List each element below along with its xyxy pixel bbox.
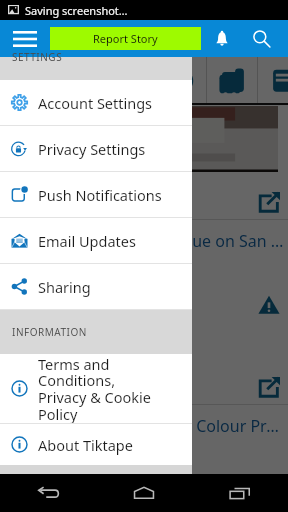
staticText: Push Notifications (38, 185, 162, 205)
button[interactable]: Category 6 (258, 57, 288, 105)
button[interactable]: Category 1 (3, 57, 54, 105)
button[interactable]: Category 2 (54, 57, 105, 105)
staticText: Sharing (38, 277, 91, 297)
button[interactable]: Category 4 (156, 57, 207, 105)
button[interactable]: About Tiktape (0, 424, 192, 465)
button[interactable]: Recent apps (192, 474, 288, 512)
staticText: SETTINGS (12, 50, 63, 64)
staticText: INFORMATION (12, 325, 87, 339)
staticText: Report Story (93, 31, 158, 46)
staticText: The Spring Flower Show Colour Promenade … (12, 415, 280, 437)
staticText: Terms and Conditions, Privacy & Cookie P… (38, 354, 160, 423)
button[interactable]: Open navigation drawer (0, 20, 50, 57)
staticText: About Tiktape (38, 435, 133, 455)
staticText: Account Settings (38, 93, 153, 113)
staticText: by Andrew Kelly (12, 259, 87, 273)
button[interactable]: Back (0, 474, 96, 512)
staticText: Privacy Settings (38, 139, 146, 159)
button[interactable]: Report (258, 294, 280, 316)
button[interactable]: Account Settings (0, 80, 192, 125)
button[interactable]: Category 3 (105, 57, 156, 105)
staticText: Email Updates (38, 231, 136, 251)
button[interactable]: Email Updates (0, 218, 192, 263)
button[interactable]: Share (258, 191, 280, 213)
button[interactable]: Home (96, 474, 192, 512)
button[interactable]: Terms and Conditions, Privacy & Cookie P… (0, 354, 192, 423)
button[interactable]: Push Notifications (0, 172, 192, 217)
staticText: The Historic Marble Statue on San Marco … (12, 230, 288, 252)
button[interactable]: Privacy Settings (0, 126, 192, 171)
button[interactable]: Category 5 (207, 57, 258, 105)
button[interactable]: Search (242, 20, 282, 57)
button[interactable]: Sharing (0, 264, 192, 309)
button[interactable]: Report Story (50, 27, 201, 50)
button[interactable]: Notifications (202, 20, 242, 57)
button[interactable]: Share (258, 376, 280, 398)
staticText: Saving screenshot… (25, 3, 128, 18)
